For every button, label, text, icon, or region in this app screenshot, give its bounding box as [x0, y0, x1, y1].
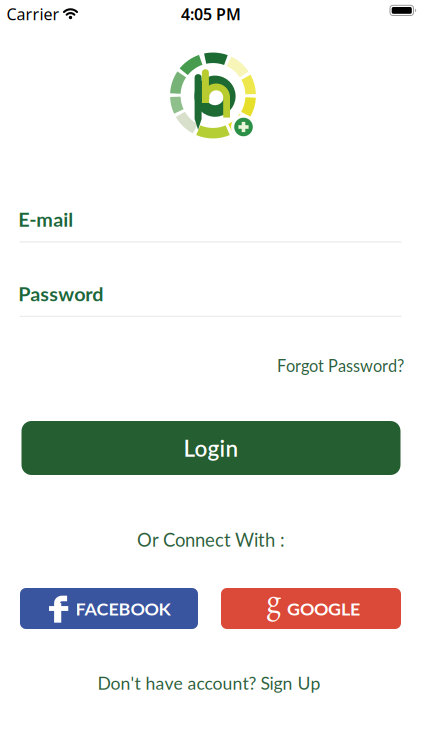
staticText: E-mail: [18, 207, 73, 231]
staticText: Carrier: [6, 3, 59, 25]
button[interactable]: Login: [21, 421, 400, 475]
button[interactable]: Forgot Password?: [277, 356, 404, 375]
staticText: Or Connect With :: [137, 529, 285, 551]
staticText: Forgot Password?: [277, 356, 404, 375]
staticText: Login: [183, 434, 238, 461]
staticText: FACEBOOK: [75, 598, 170, 619]
staticText: Sign Up: [260, 672, 320, 693]
staticText: 4:05 PM: [181, 3, 241, 25]
button[interactable]: Sign Up: [260, 672, 320, 693]
staticText: Password: [18, 282, 103, 305]
button[interactable]: g: [221, 588, 401, 629]
button[interactable]: FACEBOOK: [20, 588, 198, 629]
staticText: Don't have account?: [97, 672, 256, 693]
button[interactable]: E-mail: [19, 210, 401, 243]
staticText: GOOGLE: [287, 598, 360, 619]
staticText: g: [266, 576, 282, 623]
button[interactable]: Password: [19, 285, 401, 317]
